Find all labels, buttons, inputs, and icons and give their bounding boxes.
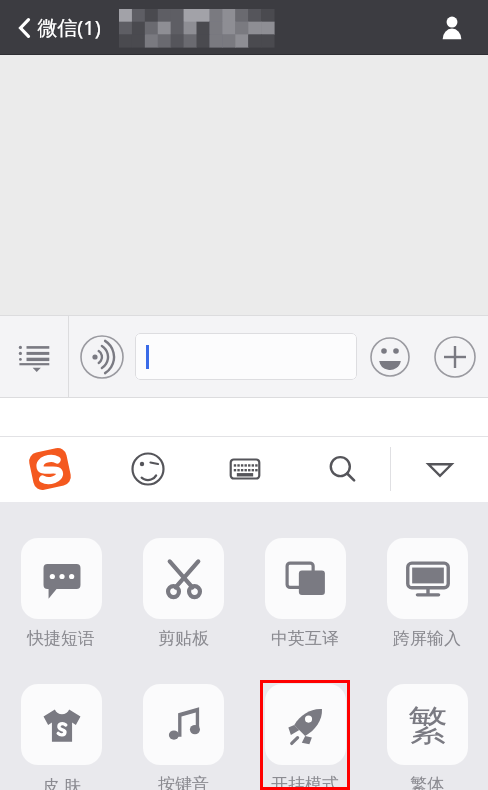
button[interactable]: Emoji — [357, 315, 422, 398]
button[interactable]: Contact profile — [430, 6, 474, 50]
staticText: 皮 肤 — [42, 774, 81, 790]
staticText: 繁体 — [410, 774, 444, 790]
button[interactable]: Voice input — [69, 315, 135, 398]
button[interactable]: Keyboard — [196, 436, 293, 502]
button[interactable]: 跨屏输入 — [382, 534, 472, 654]
button[interactable] — [135, 333, 357, 380]
button[interactable]: 微信(1) — [14, 8, 105, 47]
button[interactable]: Collapse keyboard — [391, 436, 488, 502]
button[interactable]: Emoji panel — [100, 436, 196, 502]
staticText: 繁 — [408, 700, 448, 750]
staticText: 中英互译 — [271, 628, 339, 649]
staticText: 微信(1) — [37, 14, 101, 41]
button[interactable]: 皮 肤 — [16, 680, 106, 790]
staticText: 剪贴板 — [158, 628, 209, 649]
button[interactable]: Quick phrases — [0, 315, 68, 398]
button[interactable]: Search — [293, 436, 390, 502]
button[interactable]: 剪贴板 — [138, 534, 228, 654]
staticText: 开挂模式 — [271, 774, 339, 790]
staticText: 快捷短语 — [27, 628, 95, 649]
button[interactable]: 开挂模式 — [260, 680, 350, 790]
button[interactable]: Sogou menu — [0, 436, 100, 502]
button[interactable]: 按键音 — [138, 680, 228, 790]
staticText: 按键音 — [158, 774, 209, 790]
button[interactable]: More — [422, 315, 488, 398]
staticText: 跨屏输入 — [393, 628, 461, 649]
button[interactable]: 中英互译 — [260, 534, 350, 654]
button[interactable]: 繁 — [382, 680, 472, 790]
button[interactable]: 快捷短语 — [16, 534, 106, 654]
